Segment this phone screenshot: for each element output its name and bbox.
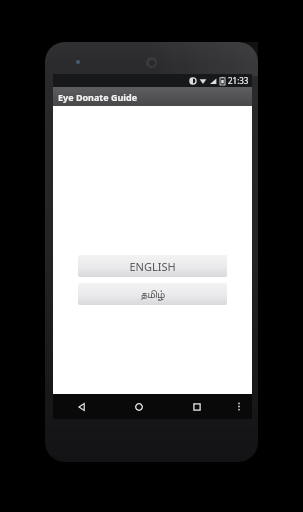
- button[interactable]: Recent apps: [168, 394, 226, 419]
- button[interactable]: Back: [53, 394, 110, 419]
- staticText: ENGLISH: [129, 259, 176, 274]
- staticText: 21:33: [228, 75, 249, 86]
- button[interactable]: தமிழ்: [78, 283, 227, 305]
- staticText: Eye Donate Guide: [58, 91, 138, 103]
- staticText: தமிழ்: [140, 289, 165, 300]
- button[interactable]: Home: [110, 394, 168, 419]
- button[interactable]: ENGLISH: [78, 255, 227, 277]
- button[interactable]: More options: [226, 394, 252, 419]
